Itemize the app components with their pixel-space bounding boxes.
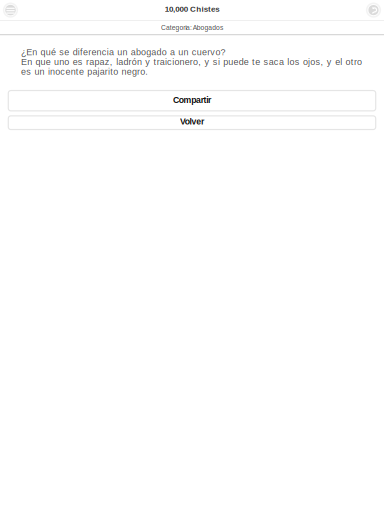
staticText: ¿En qué se diferencia un abogado a un cu… bbox=[21, 47, 226, 57]
button[interactable]: Volver bbox=[8, 116, 376, 130]
staticText: es un inocente pajarito negro. bbox=[21, 67, 148, 77]
staticText: 10,000 Chistes bbox=[165, 4, 219, 13]
button[interactable]: Reload bbox=[365, 2, 381, 18]
staticText: Categoria: Abogados bbox=[161, 24, 223, 31]
staticText: En que uno es rapaz, ladrón y traicioner… bbox=[21, 57, 362, 67]
staticText: Compartir bbox=[173, 95, 211, 105]
staticText: Volver bbox=[180, 117, 204, 126]
button[interactable]: Menu bbox=[2, 2, 18, 18]
button[interactable]: Compartir bbox=[8, 91, 376, 111]
